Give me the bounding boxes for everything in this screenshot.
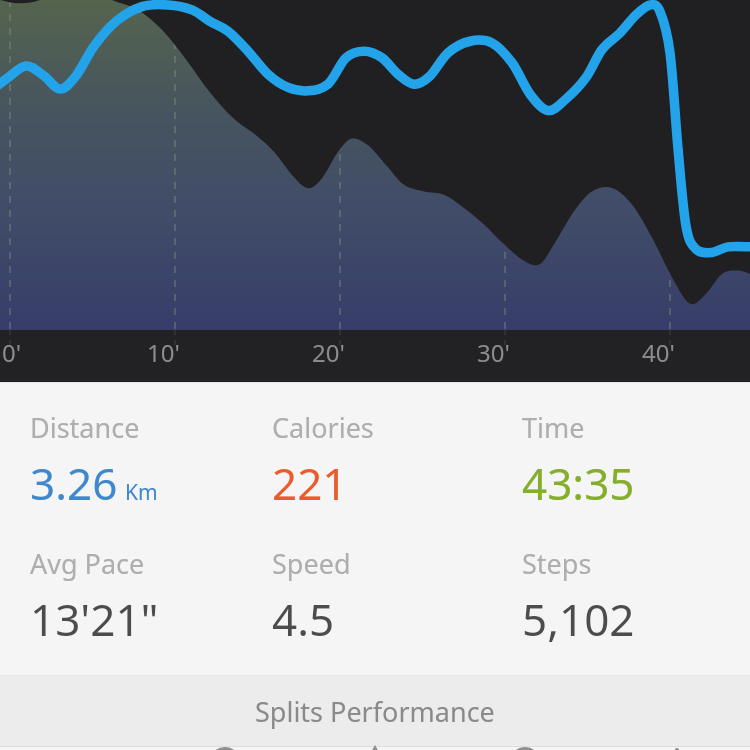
staticText: Steps <box>522 545 592 582</box>
staticText: Avg Pace <box>30 545 145 582</box>
staticText: 221 <box>272 453 348 513</box>
staticText: Calories <box>272 409 374 446</box>
staticText: 30' <box>477 336 510 369</box>
button[interactable]: Community <box>450 747 600 750</box>
staticText: Distance <box>30 409 140 446</box>
staticText: 4.5 <box>272 589 335 649</box>
staticText: Speed <box>272 545 351 582</box>
button[interactable]: Me <box>600 747 750 750</box>
button[interactable]: Record <box>150 747 300 750</box>
staticText: 0' <box>2 336 22 369</box>
staticText: 13'21" <box>30 589 159 649</box>
staticText: 20' <box>312 336 345 369</box>
staticText: Splits Performance <box>255 693 495 730</box>
staticText: 40' <box>642 336 675 369</box>
staticText: 10' <box>147 336 180 369</box>
button[interactable]: Splits Performance <box>0 676 750 746</box>
staticText: 43:35 <box>522 453 635 513</box>
button[interactable]: Discover <box>300 747 450 750</box>
staticText: Km <box>125 478 158 507</box>
staticText: 3.26 <box>30 453 118 513</box>
staticText: Time <box>522 409 585 446</box>
staticText: 5,102 <box>522 589 635 649</box>
